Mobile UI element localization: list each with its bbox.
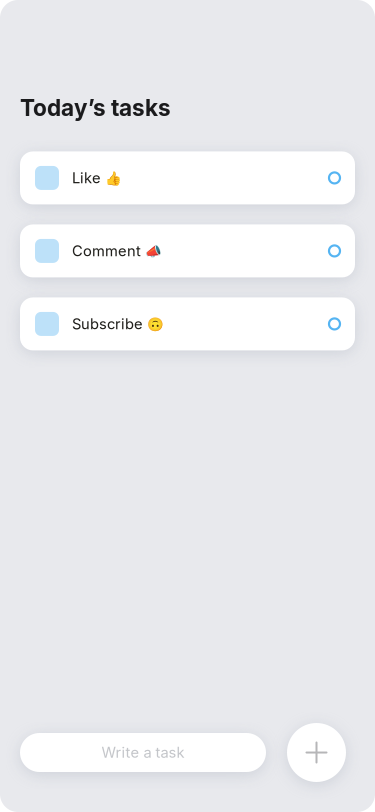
button[interactable]: Like 👍	[20, 151, 355, 204]
staticText: Comment 📣	[72, 242, 162, 260]
staticText: Subscribe 🙃	[72, 315, 164, 333]
button[interactable]: Subscribe 🙃	[20, 297, 355, 350]
button[interactable]: Comment 📣	[20, 224, 355, 277]
staticText: Write a task	[101, 744, 184, 761]
staticText: Like 👍	[72, 169, 122, 187]
button[interactable]: Add task	[287, 723, 346, 782]
staticText: Today’s tasks	[20, 94, 171, 121]
button[interactable]: Write a task	[20, 733, 266, 772]
